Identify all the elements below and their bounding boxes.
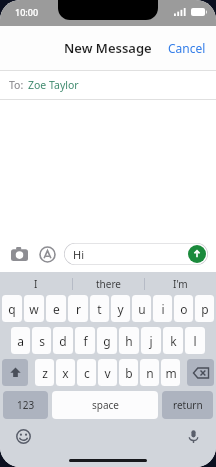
button[interactable]: w [24,295,44,322]
staticText: f [83,333,88,349]
button[interactable]: j [141,327,161,354]
button[interactable]: return [162,391,213,419]
button[interactable]: u [132,295,151,322]
staticText: u [138,301,146,317]
button[interactable]: t [90,295,109,322]
staticText: d [59,333,67,349]
staticText: y [117,301,124,317]
button[interactable]: To: [0,71,216,99]
button[interactable]: e [46,295,66,322]
staticText: o [180,301,188,317]
button[interactable]: I'm [145,272,216,295]
staticText: To: [9,78,24,92]
button[interactable]: k [163,327,183,354]
staticText: t [97,301,102,317]
button[interactable]: b [119,359,138,386]
button[interactable]: 123 [3,391,48,419]
button[interactable]: space [52,391,158,419]
button[interactable]: a [11,327,30,354]
button[interactable]: d [53,327,73,354]
button[interactable]: n [140,359,159,386]
staticText: v [104,365,111,381]
staticText: I'm [173,277,188,291]
staticText: s [39,333,45,349]
button[interactable]: Delete [187,359,214,386]
button[interactable]: l [185,327,205,354]
button[interactable]: x [56,359,75,386]
button[interactable]: h [119,327,139,354]
staticText: Zoe Taylor [28,78,79,92]
button[interactable]: o [174,295,193,322]
staticText: j [149,333,153,349]
button[interactable]: s [32,327,51,354]
staticText: w [29,301,39,317]
button[interactable]: i [153,295,172,322]
button[interactable]: g [97,327,117,354]
button[interactable]: p [195,295,214,322]
staticText: q [8,301,16,317]
staticText: p [201,301,209,317]
staticText: b [125,365,133,381]
button[interactable]: there [73,272,144,295]
button[interactable]: I [0,272,72,295]
staticText: Cancel [168,40,206,56]
staticText: n [146,365,154,381]
button[interactable]: Dictation [182,425,204,447]
button[interactable]: f [75,327,95,354]
staticText: 10:00 [15,6,39,18]
button[interactable]: App Store [36,243,58,265]
staticText: h [125,333,133,349]
staticText: I [34,277,38,291]
staticText: m [165,365,177,381]
button[interactable]: Camera [8,243,30,265]
staticText: 123 [17,398,35,412]
button[interactable]: Send [188,245,206,263]
button[interactable]: c [77,359,96,386]
staticText: g [103,333,111,349]
button[interactable]: v [98,359,117,386]
button[interactable]: y [111,295,130,322]
button[interactable]: Cancel [158,32,216,64]
staticText: New Message [64,39,152,57]
staticText: return [173,398,203,412]
staticText: z [42,365,48,381]
staticText: x [62,365,69,381]
staticText: l [193,333,197,349]
staticText: there [96,277,121,291]
button[interactable]: Emoji [12,425,34,447]
button[interactable]: m [161,359,180,386]
button[interactable]: Hi [64,243,208,265]
staticText: space [92,398,119,412]
staticText: r [76,301,81,317]
staticText: c [84,365,90,381]
staticText: i [161,301,165,317]
button[interactable]: r [68,295,88,322]
button[interactable]: z [35,359,54,386]
staticText: k [170,333,177,349]
staticText: e [53,301,60,317]
button[interactable]: Shift [2,359,28,386]
staticText: a [17,333,24,349]
staticText: Hi [73,247,84,262]
button[interactable]: q [2,295,22,322]
